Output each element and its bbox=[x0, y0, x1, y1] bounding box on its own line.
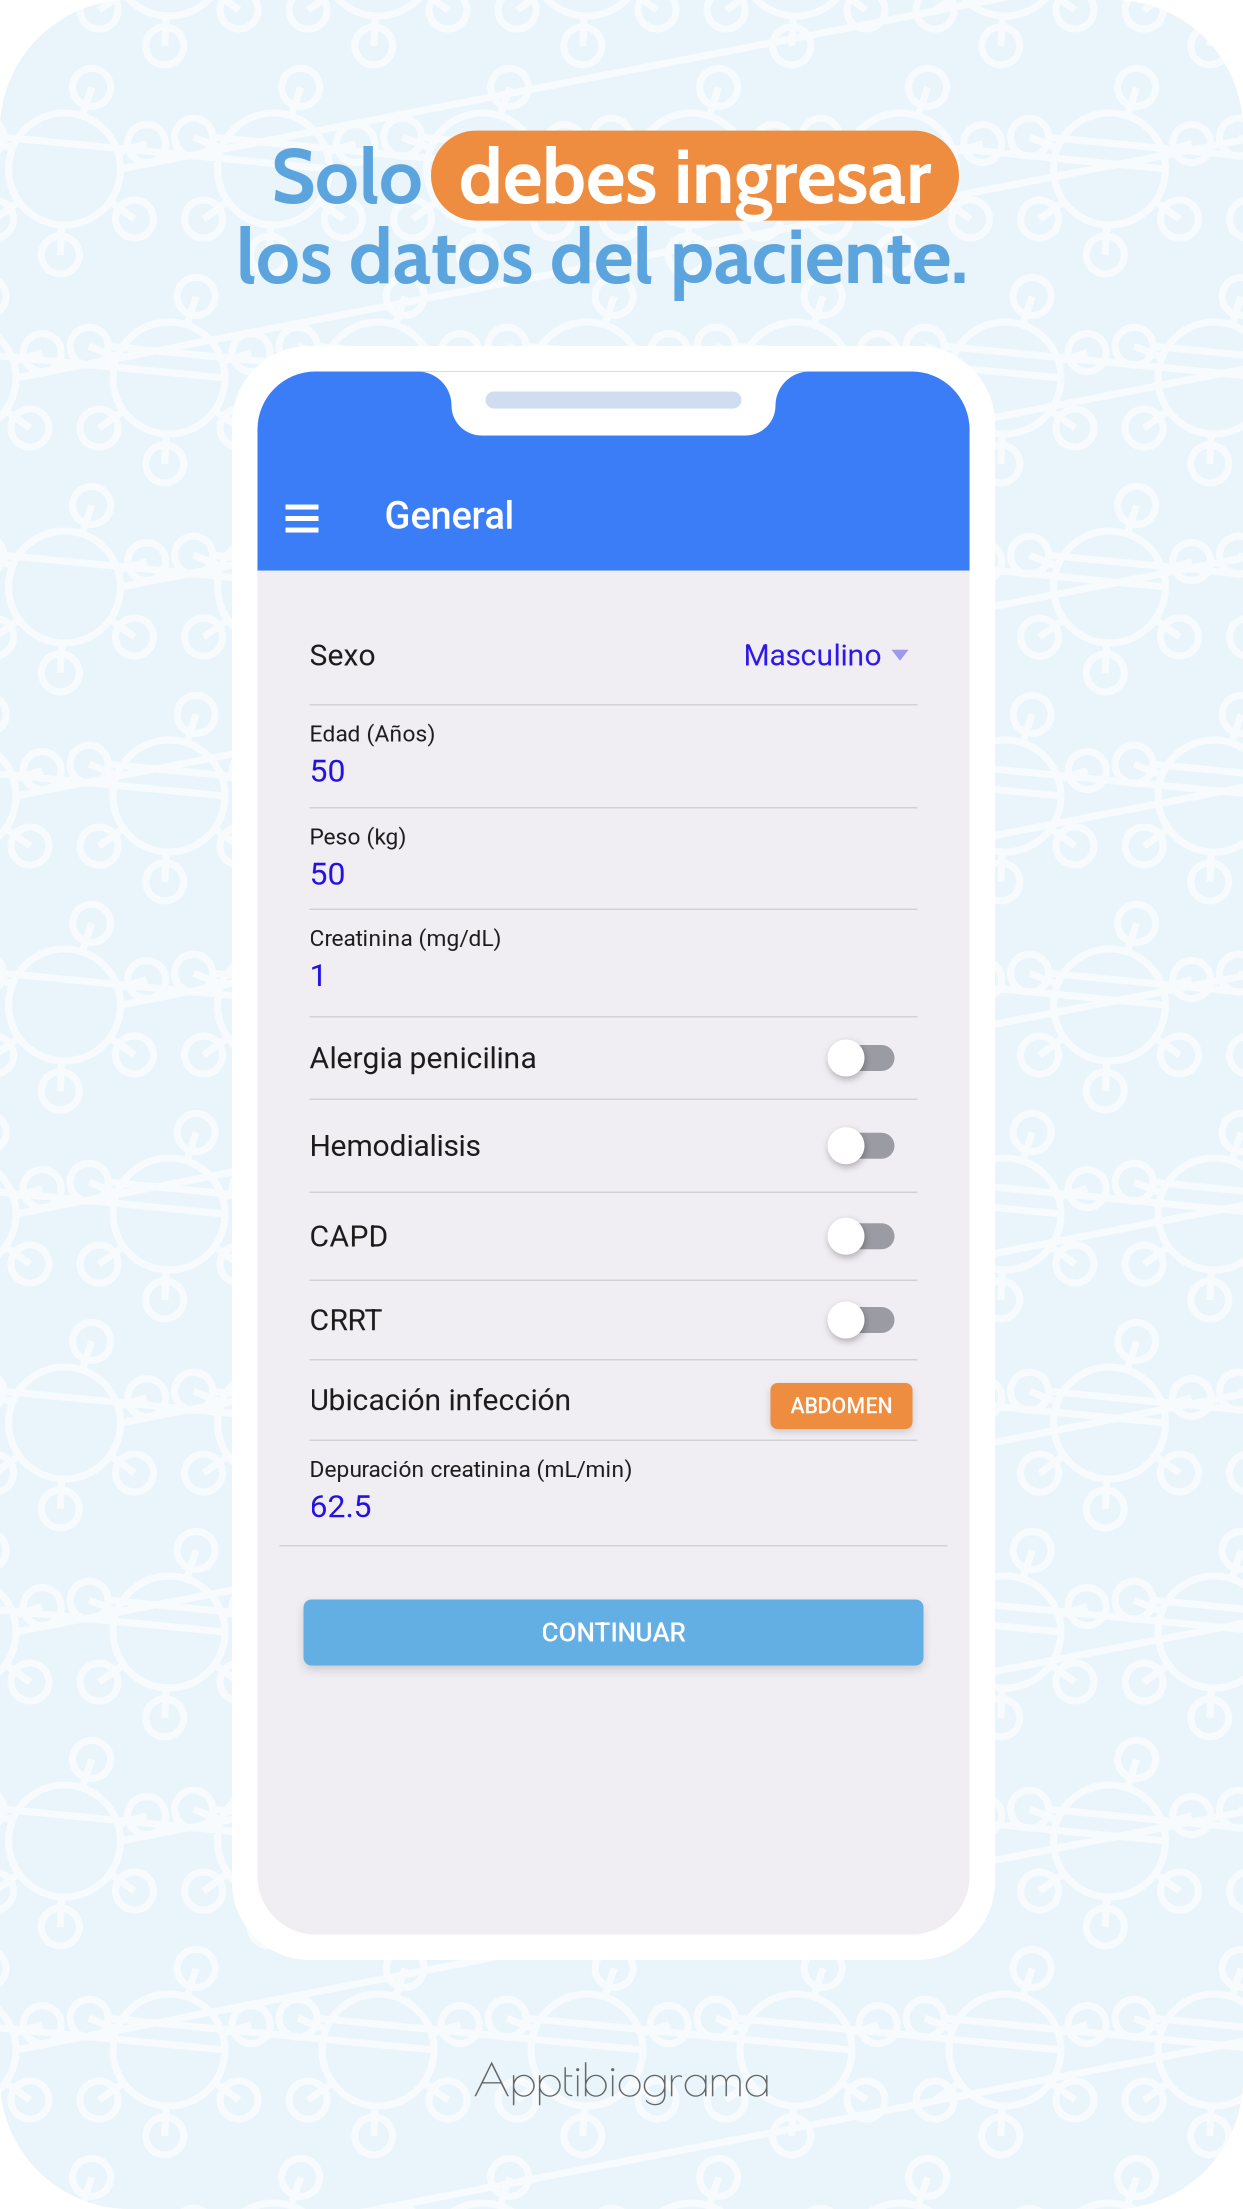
staticText: Solo bbox=[271, 129, 423, 222]
staticText: 62.5 bbox=[309, 1488, 371, 1525]
staticText: Hemodialisis bbox=[309, 1128, 480, 1163]
staticText: Apptibiograma bbox=[473, 2052, 770, 2106]
staticText: 50 bbox=[309, 752, 345, 790]
staticText: Creatinina (mg/dL) bbox=[309, 925, 501, 952]
button[interactable]: ABDOMEN bbox=[770, 1377, 912, 1423]
staticText: Sexo bbox=[309, 638, 375, 673]
staticText: Depuración creatinina (mL/min) bbox=[309, 1456, 632, 1483]
staticText: ABDOMEN bbox=[790, 1393, 892, 1418]
staticText: debes ingresar bbox=[459, 129, 931, 222]
staticText: CONTINUAR bbox=[541, 1617, 685, 1648]
button[interactable]: Alergia penicilina bbox=[257, 1017, 969, 1098]
staticText: Edad (Años) bbox=[309, 720, 435, 747]
staticText: Alergia penicilina bbox=[309, 1040, 536, 1076]
staticText: CAPD bbox=[309, 1219, 388, 1254]
staticText: Masculino bbox=[743, 638, 881, 673]
staticText: Peso (kg) bbox=[309, 823, 406, 850]
staticText: CRRT bbox=[309, 1302, 382, 1338]
staticText: los datos del paciente. bbox=[236, 209, 968, 302]
staticText: 1 bbox=[309, 957, 327, 994]
button[interactable]: CONTINUAR bbox=[303, 1599, 923, 1665]
staticText: 50 bbox=[309, 855, 345, 893]
button[interactable]: CRRT bbox=[257, 1281, 969, 1359]
staticText: Ubicación infección bbox=[309, 1382, 571, 1418]
button[interactable]: CAPD bbox=[257, 1193, 969, 1279]
staticText: General bbox=[384, 493, 514, 538]
button[interactable]: Menu bbox=[265, 484, 338, 552]
button[interactable]: Hemodialisis bbox=[257, 1100, 969, 1191]
